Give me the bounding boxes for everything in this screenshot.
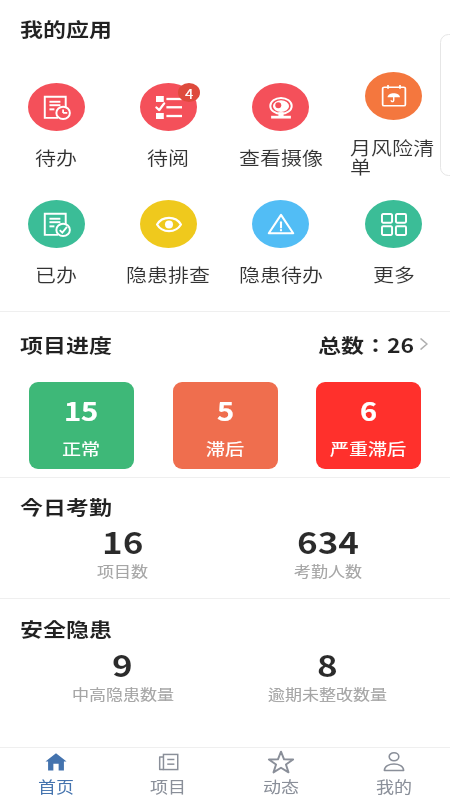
button[interactable]: 更多 bbox=[337, 200, 450, 289]
staticText: 项目 bbox=[150, 775, 186, 797]
button[interactable]: 首页 bbox=[0, 748, 112, 800]
staticText: 总数：26 bbox=[318, 329, 415, 358]
button[interactable]: 我的 bbox=[337, 748, 450, 800]
button[interactable]: 月风险清单 bbox=[337, 72, 450, 183]
staticText: 考勤人数 bbox=[294, 560, 362, 581]
button[interactable]: 待办 bbox=[0, 83, 112, 172]
button[interactable]: 项目 bbox=[112, 748, 224, 800]
staticText: 逾期未整改数量 bbox=[268, 683, 387, 704]
staticText: 隐患排查 bbox=[126, 261, 210, 287]
staticText: 滞后 bbox=[206, 436, 245, 460]
button[interactable]: 9 bbox=[20, 638, 225, 714]
staticText: 项目进度 bbox=[20, 329, 112, 358]
button[interactable]: 隐患排查 bbox=[112, 200, 224, 289]
staticText: 查看摄像 bbox=[239, 144, 323, 170]
button[interactable]: 16 bbox=[20, 515, 225, 591]
button[interactable]: 634 bbox=[225, 515, 430, 591]
button[interactable]: 15 bbox=[29, 382, 134, 469]
staticText: 已办 bbox=[35, 261, 77, 287]
button[interactable]: 总数：26 bbox=[318, 327, 429, 360]
staticText: 我的应用 bbox=[20, 13, 112, 42]
staticText: 首页 bbox=[38, 775, 74, 797]
staticText: 待阅 bbox=[147, 144, 189, 170]
button[interactable]: 已办 bbox=[0, 200, 112, 289]
button[interactable]: 动态 bbox=[224, 748, 337, 800]
staticText: 严重滞后 bbox=[330, 436, 407, 460]
button[interactable]: 6 bbox=[316, 382, 421, 469]
button[interactable]: 查看摄像 bbox=[224, 83, 337, 172]
button[interactable]: 隐患待办 bbox=[224, 200, 337, 289]
staticText: 6 bbox=[360, 392, 378, 428]
staticText: 5 bbox=[217, 392, 235, 428]
staticText: 待办 bbox=[35, 144, 77, 170]
staticText: 16 bbox=[102, 519, 144, 562]
staticText: 月风险清单 bbox=[350, 135, 438, 179]
staticText: 15 bbox=[64, 392, 99, 428]
staticText: 我的 bbox=[376, 775, 412, 797]
staticText: 正常 bbox=[62, 436, 101, 460]
button[interactable]: 5 bbox=[173, 382, 278, 469]
staticText: 4 bbox=[185, 84, 194, 101]
staticText: 更多 bbox=[373, 261, 415, 287]
button[interactable]: 4 bbox=[112, 83, 224, 172]
staticText: 隐患待办 bbox=[239, 261, 323, 287]
button[interactable]: 8 bbox=[225, 638, 430, 714]
staticText: 项目数 bbox=[97, 560, 148, 581]
staticText: 8 bbox=[317, 642, 338, 685]
staticText: 动态 bbox=[263, 775, 299, 797]
staticText: 安全隐患 bbox=[20, 613, 112, 642]
staticText: 中高隐患数量 bbox=[72, 683, 174, 704]
staticText: 9 bbox=[112, 642, 133, 685]
staticText: 今日考勤 bbox=[20, 491, 112, 520]
staticText: 634 bbox=[297, 519, 359, 562]
